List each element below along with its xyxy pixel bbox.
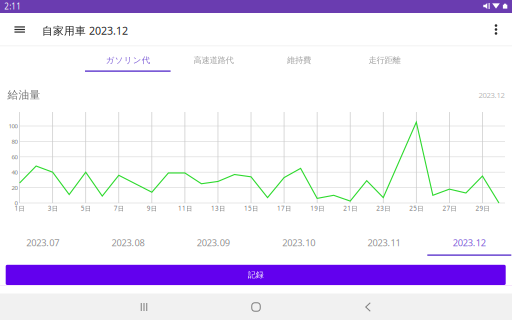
staticText: 20 xyxy=(11,183,17,192)
staticText: 17日 xyxy=(277,204,291,213)
staticText: 維持費 xyxy=(287,55,311,65)
staticText: 走行距離 xyxy=(369,55,401,65)
staticText: 2023.10 xyxy=(282,236,315,249)
button[interactable]: 記録 xyxy=(0,0,512,320)
staticText: 2023.07 xyxy=(26,236,59,249)
button[interactable]: Back xyxy=(0,0,512,320)
staticText: 2023.12 xyxy=(453,236,486,249)
staticText: 60 xyxy=(11,153,17,161)
button[interactable]: More options xyxy=(0,0,512,320)
staticText: 11日 xyxy=(178,204,192,213)
staticText: 27日 xyxy=(442,204,456,213)
button[interactable]: 高速道路代 xyxy=(0,0,512,320)
staticText: 29日 xyxy=(475,204,489,213)
button[interactable]: 2023.12 xyxy=(0,0,512,320)
button[interactable]: 維持費 xyxy=(0,0,512,320)
staticText: 21日 xyxy=(343,204,357,213)
staticText: 80 xyxy=(11,137,17,145)
staticText: 1日 xyxy=(15,204,25,213)
button[interactable]: 2023.08 xyxy=(0,0,512,320)
staticText: 23日 xyxy=(376,204,390,213)
button[interactable]: Navigation menu xyxy=(0,0,512,320)
button[interactable]: Recents xyxy=(0,0,512,320)
button[interactable]: Home xyxy=(0,0,512,320)
staticText: 100 xyxy=(8,122,17,130)
staticText: 2023.11 xyxy=(367,236,400,249)
button[interactable]: 走行距離 xyxy=(0,0,512,320)
staticText: 5日 xyxy=(81,204,91,213)
staticText: 19日 xyxy=(310,204,324,213)
staticText: 高速道路代 xyxy=(193,55,233,65)
staticText: 2023.12 xyxy=(478,90,504,100)
button[interactable]: 2023.09 xyxy=(0,0,512,320)
staticText: 2:11 xyxy=(4,1,21,12)
staticText: 9日 xyxy=(147,204,157,213)
staticText: 0 xyxy=(14,199,17,207)
button[interactable]: ガソリン代 xyxy=(0,0,512,320)
staticText: 15日 xyxy=(244,204,258,213)
staticText: 40 xyxy=(11,168,17,176)
staticText: 給油量 xyxy=(8,88,41,102)
staticText: 2023.09 xyxy=(197,236,230,249)
staticText: 7日 xyxy=(114,204,124,213)
button[interactable]: 2023.11 xyxy=(0,0,512,320)
staticText: 3日 xyxy=(48,204,58,213)
staticText: ガソリン代 xyxy=(106,55,150,65)
staticText: 25日 xyxy=(409,204,423,213)
button[interactable]: 2023.07 xyxy=(0,0,512,320)
staticText: 2023.08 xyxy=(111,236,144,249)
button[interactable]: 2023.10 xyxy=(0,0,512,320)
staticText: 13日 xyxy=(211,204,225,213)
staticText: 自家用車 2023.12 xyxy=(42,23,128,38)
staticText: 記録 xyxy=(248,270,264,280)
